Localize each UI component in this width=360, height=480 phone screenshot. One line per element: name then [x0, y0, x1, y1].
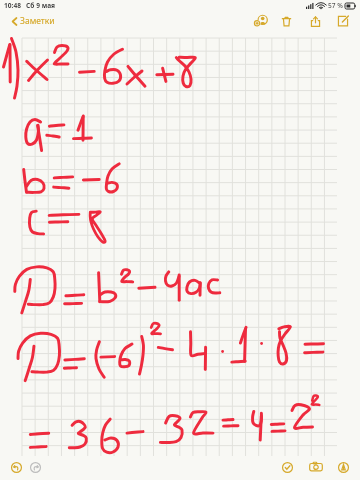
staticText: Заметки	[20, 15, 55, 27]
button[interactable]: Delete	[277, 12, 295, 30]
button[interactable]: Markup	[334, 458, 352, 476]
button[interactable]: Add people	[252, 12, 270, 30]
button[interactable]: Undo	[7, 458, 25, 476]
button[interactable]: Share	[306, 12, 324, 30]
button[interactable]: Compose	[334, 12, 352, 30]
button[interactable]: Done	[278, 458, 296, 476]
staticText: 57 %	[328, 1, 343, 10]
button[interactable]: Camera	[307, 458, 325, 476]
button[interactable]: Заметки	[12, 15, 55, 27]
staticText: 10:48 Сб 9 мая	[4, 1, 56, 10]
button[interactable]: Redo	[26, 458, 44, 476]
